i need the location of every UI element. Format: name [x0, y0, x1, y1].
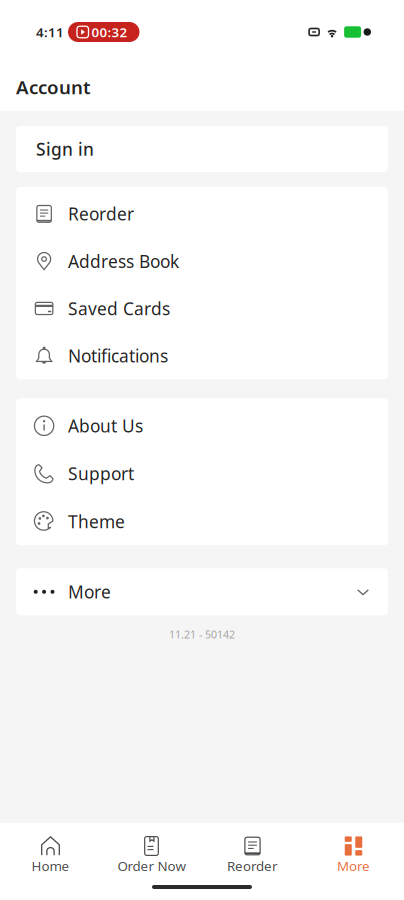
staticText: Account	[16, 75, 91, 99]
button[interactable]: Reorder	[202, 836, 303, 875]
button[interactable]: Sign in	[16, 126, 388, 172]
staticText: About Us	[68, 414, 143, 437]
button[interactable]: Notifications	[16, 332, 388, 379]
staticText: Notifications	[68, 344, 168, 367]
staticText: 4:11	[36, 23, 64, 41]
staticText: Theme	[68, 510, 125, 533]
button[interactable]: More	[16, 568, 388, 615]
staticText: Home	[31, 857, 69, 875]
staticText: Order Now	[117, 857, 185, 875]
button[interactable]: Theme	[16, 497, 388, 545]
staticText: 00:32	[91, 23, 127, 41]
staticText: Sign in	[36, 137, 94, 160]
staticText: Reorder	[68, 202, 134, 225]
staticText: Address Book	[68, 250, 179, 273]
staticText: Reorder	[227, 857, 278, 875]
staticText: Saved Cards	[68, 297, 170, 320]
button[interactable]: Reorder	[16, 190, 388, 237]
button[interactable]: Home	[0, 836, 101, 875]
staticText: Support	[68, 462, 134, 485]
staticText: 11.21 - 50142	[169, 627, 235, 641]
button[interactable]: About Us	[16, 402, 388, 450]
button[interactable]: More	[303, 836, 404, 875]
button[interactable]: Saved Cards	[16, 285, 388, 332]
button[interactable]: Order Now	[101, 836, 202, 875]
staticText: More	[68, 580, 111, 603]
staticText: More	[337, 857, 370, 875]
button[interactable]: Support	[16, 450, 388, 497]
button[interactable]: Address Book	[16, 237, 388, 285]
